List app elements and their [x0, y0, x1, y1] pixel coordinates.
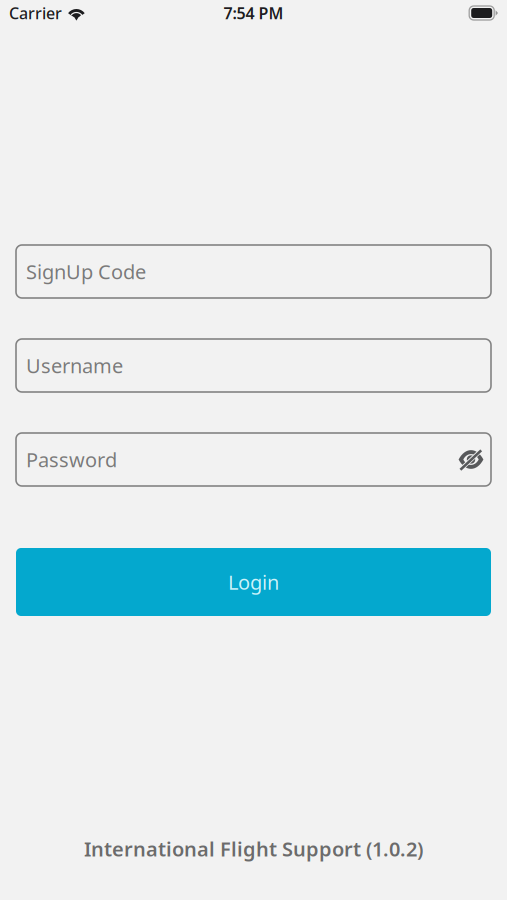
staticText: Carrier: [9, 2, 62, 24]
button[interactable]: Password: [16, 433, 491, 486]
staticText: Login: [228, 569, 279, 595]
staticText: Password: [26, 446, 117, 473]
staticText: SignUp Code: [26, 258, 146, 285]
button[interactable]: Username: [16, 339, 491, 392]
button[interactable]: Login: [16, 548, 491, 616]
staticText: 7:54 PM: [223, 2, 283, 24]
staticText: Username: [26, 352, 123, 379]
button[interactable]: Show password: [458, 449, 484, 470]
button[interactable]: SignUp Code: [16, 245, 491, 298]
staticText: International Flight Support (1.0.2): [84, 835, 423, 862]
